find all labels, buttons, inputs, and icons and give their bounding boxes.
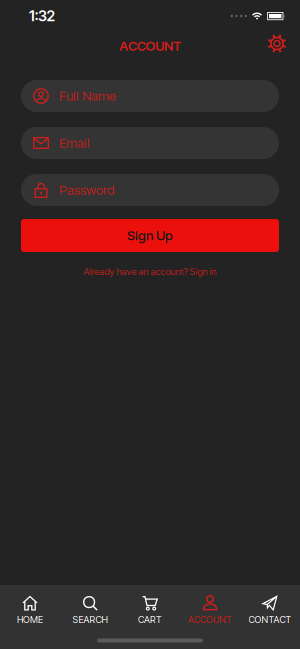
staticText: ACCOUNT [188, 614, 232, 625]
staticText: Email [59, 135, 90, 151]
button[interactable]: ACCOUNT [180, 595, 240, 625]
staticText: SEARCH [72, 614, 107, 625]
staticText: Sign Up [127, 228, 173, 243]
staticText: ACCOUNT [119, 38, 181, 54]
button[interactable]: CART [120, 595, 180, 625]
staticText: Already have an account? Sign in [83, 266, 216, 277]
staticText: Full Name [59, 88, 116, 104]
staticText: CART [138, 614, 162, 625]
staticText: HOME [17, 614, 43, 625]
button[interactable] [267, 33, 287, 53]
button[interactable]: HOME [0, 595, 60, 625]
button[interactable]: Email [21, 127, 279, 159]
button[interactable]: Full Name [21, 80, 279, 112]
button[interactable]: Sign Up [21, 219, 279, 252]
button[interactable]: CONTACT [240, 595, 300, 625]
staticText: CONTACT [248, 614, 291, 625]
button[interactable]: Password [21, 174, 279, 206]
staticText: 1:32 [29, 7, 55, 25]
button[interactable]: Already have an account? Sign in [83, 266, 216, 277]
staticText: Password [59, 182, 114, 198]
button[interactable]: SEARCH [60, 595, 120, 625]
